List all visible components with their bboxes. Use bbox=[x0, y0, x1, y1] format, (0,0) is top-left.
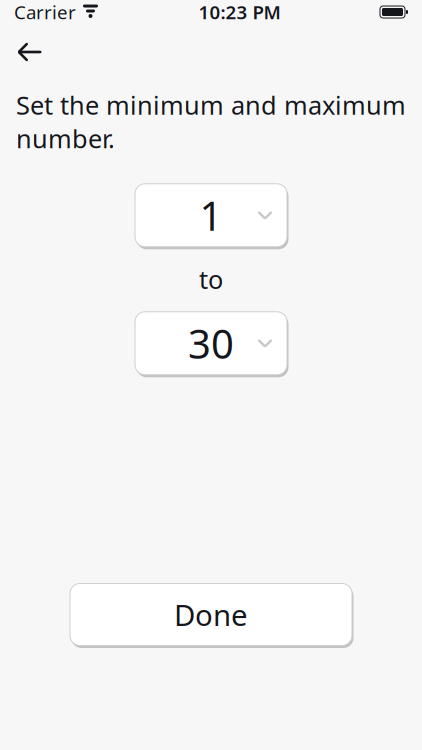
staticText: Carrier bbox=[14, 0, 76, 24]
button[interactable]: Done bbox=[68, 581, 354, 648]
staticText: 30 bbox=[188, 317, 234, 370]
staticText: Set the minimum and maximum number. bbox=[16, 88, 406, 155]
staticText: 10:23 PM bbox=[198, 0, 280, 24]
button[interactable]: Back bbox=[6, 32, 52, 72]
staticText: 1 bbox=[199, 189, 222, 242]
button[interactable]: 30 bbox=[133, 309, 289, 377]
staticText: to bbox=[199, 262, 223, 296]
button[interactable]: 1 bbox=[133, 181, 289, 249]
staticText: Done bbox=[174, 595, 248, 634]
